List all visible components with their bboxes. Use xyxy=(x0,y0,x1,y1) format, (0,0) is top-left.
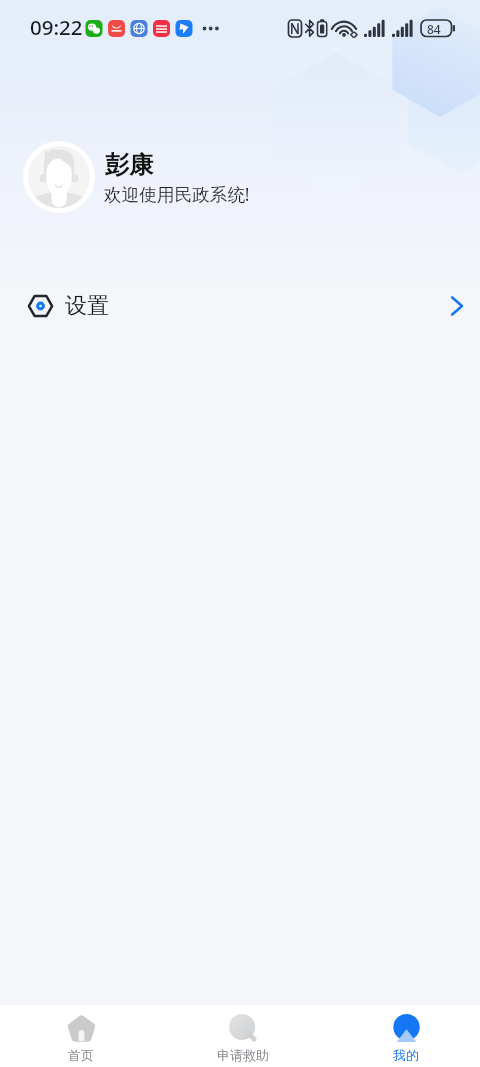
button[interactable]: 头像 xyxy=(14,132,364,222)
button[interactable]: 设置 xyxy=(0,277,480,335)
staticText: 设置 xyxy=(65,292,109,320)
staticText: 申请救助 xyxy=(217,1047,269,1063)
button[interactable]: 申请救助 xyxy=(162,1005,324,1067)
staticText: 09:22 xyxy=(30,13,83,41)
staticText: 首页 xyxy=(68,1047,94,1063)
staticText: 欢迎使用民政系统! xyxy=(104,182,250,206)
staticText: 我的 xyxy=(393,1047,419,1063)
staticText: 84 xyxy=(427,21,441,37)
staticText: 彭康 xyxy=(105,150,153,180)
button[interactable]: 首页 xyxy=(0,1005,162,1067)
button[interactable]: 我的 xyxy=(325,1005,480,1067)
other: 头像 xyxy=(23,141,95,213)
